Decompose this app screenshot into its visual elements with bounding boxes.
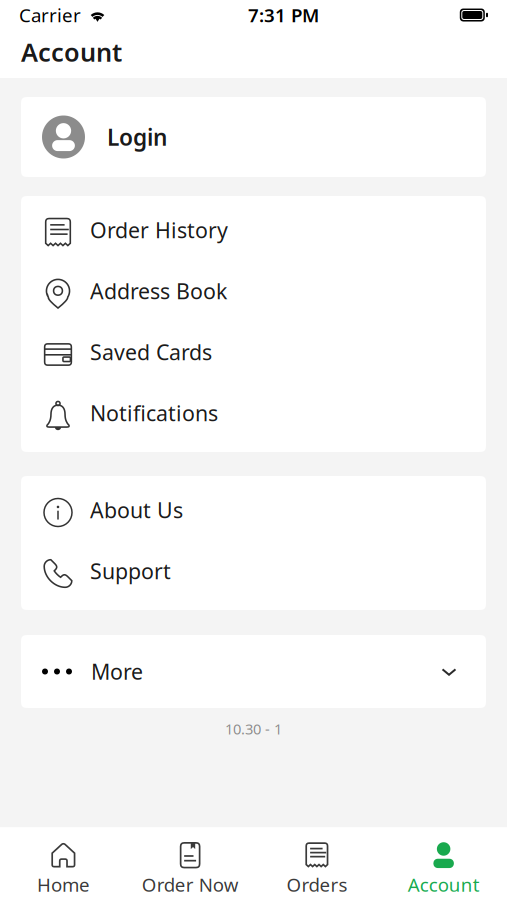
staticText: Carrier xyxy=(19,3,81,27)
staticText: 7:31 PM xyxy=(248,3,319,27)
button[interactable]: Home xyxy=(0,842,127,897)
staticText: Support xyxy=(90,557,171,585)
button[interactable]: More xyxy=(21,641,486,702)
staticText: Orders xyxy=(286,872,347,897)
staticText: Account xyxy=(408,872,480,897)
button[interactable]: About Us xyxy=(21,482,486,543)
button[interactable]: Order Now xyxy=(127,842,254,897)
button[interactable]: Order History xyxy=(21,202,486,263)
staticText: Notifications xyxy=(90,399,218,427)
button[interactable]: Address Book xyxy=(21,263,486,324)
button[interactable]: Orders xyxy=(253,842,380,897)
button[interactable]: Support xyxy=(21,543,486,604)
staticText: Home xyxy=(37,872,90,897)
button[interactable]: Account xyxy=(380,842,507,897)
staticText: Address Book xyxy=(90,277,227,305)
staticText: About Us xyxy=(90,496,183,524)
button[interactable]: Saved Cards xyxy=(21,324,486,385)
staticText: Login xyxy=(107,122,167,152)
staticText: Order History xyxy=(90,216,228,244)
button[interactable]: Login xyxy=(21,97,486,177)
staticText: 10.30 - 1 xyxy=(225,719,282,738)
staticText: Account xyxy=(21,35,122,69)
button[interactable]: Notifications xyxy=(21,385,486,446)
staticText: Order Now xyxy=(142,872,239,897)
staticText: More xyxy=(91,657,143,686)
staticText: Saved Cards xyxy=(90,338,212,366)
